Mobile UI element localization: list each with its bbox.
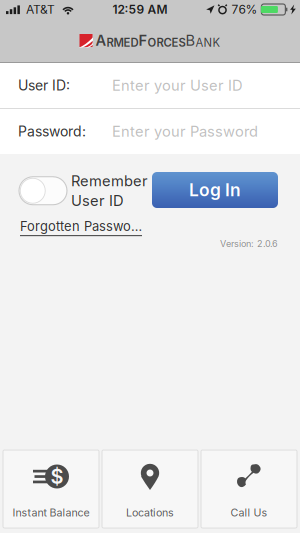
staticText: Version: 2.0.6: [220, 238, 278, 249]
staticText: A: [95, 32, 106, 49]
staticText: 12:59 AM: [112, 2, 167, 17]
button[interactable]: Call Us: [201, 450, 297, 528]
staticText: Locations: [126, 506, 174, 519]
staticText: Forgotten Password: [20, 218, 142, 234]
staticText: AT&T: [26, 2, 55, 17]
staticText: Instant Balance: [12, 506, 89, 519]
staticText: B: [185, 32, 195, 49]
staticText: RMED: [106, 36, 138, 49]
staticText: $: [50, 464, 63, 489]
button[interactable]: User ID:: [0, 63, 300, 108]
button[interactable]: Remember: [19, 172, 149, 209]
button[interactable]: Locations: [102, 450, 198, 528]
button[interactable]: $: [3, 450, 99, 528]
staticText: 76%: [231, 2, 257, 17]
staticText: ANK: [195, 36, 220, 49]
staticText: F: [138, 32, 147, 49]
staticText: Remember: [71, 172, 148, 190]
staticText: Enter your User ID: [112, 77, 243, 94]
staticText: User ID:: [18, 77, 70, 94]
button[interactable]: Password:: [0, 109, 300, 154]
button[interactable]: Forgotten Password: [20, 218, 142, 236]
staticText: Password:: [18, 123, 86, 140]
button[interactable]: Log In: [152, 172, 278, 208]
staticText: User ID: [71, 192, 124, 209]
staticText: Log In: [189, 179, 241, 200]
staticText: Call Us: [230, 506, 267, 519]
staticText: ORCES: [147, 36, 185, 49]
staticText: Enter your Password: [112, 123, 258, 140]
